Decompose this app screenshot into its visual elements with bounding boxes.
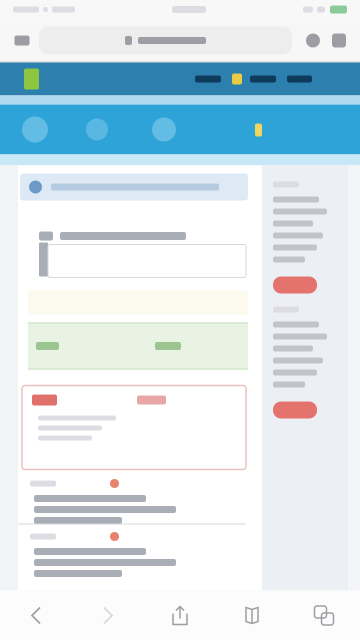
button[interactable]: Back (0, 590, 72, 640)
button[interactable]: Reload (300, 24, 326, 56)
button[interactable] (18, 524, 246, 576)
button[interactable] (18, 471, 246, 523)
button[interactable]: More (326, 24, 352, 56)
button[interactable]: Tabs (288, 590, 360, 640)
button[interactable]: Page settings (10, 24, 34, 56)
button[interactable]: Subscribe (273, 262, 340, 293)
button[interactable]: Subscribe (273, 387, 340, 418)
button[interactable]: Share (144, 590, 216, 640)
button[interactable]: Bookmarks (216, 590, 288, 640)
button[interactable]: Forward (72, 590, 144, 640)
